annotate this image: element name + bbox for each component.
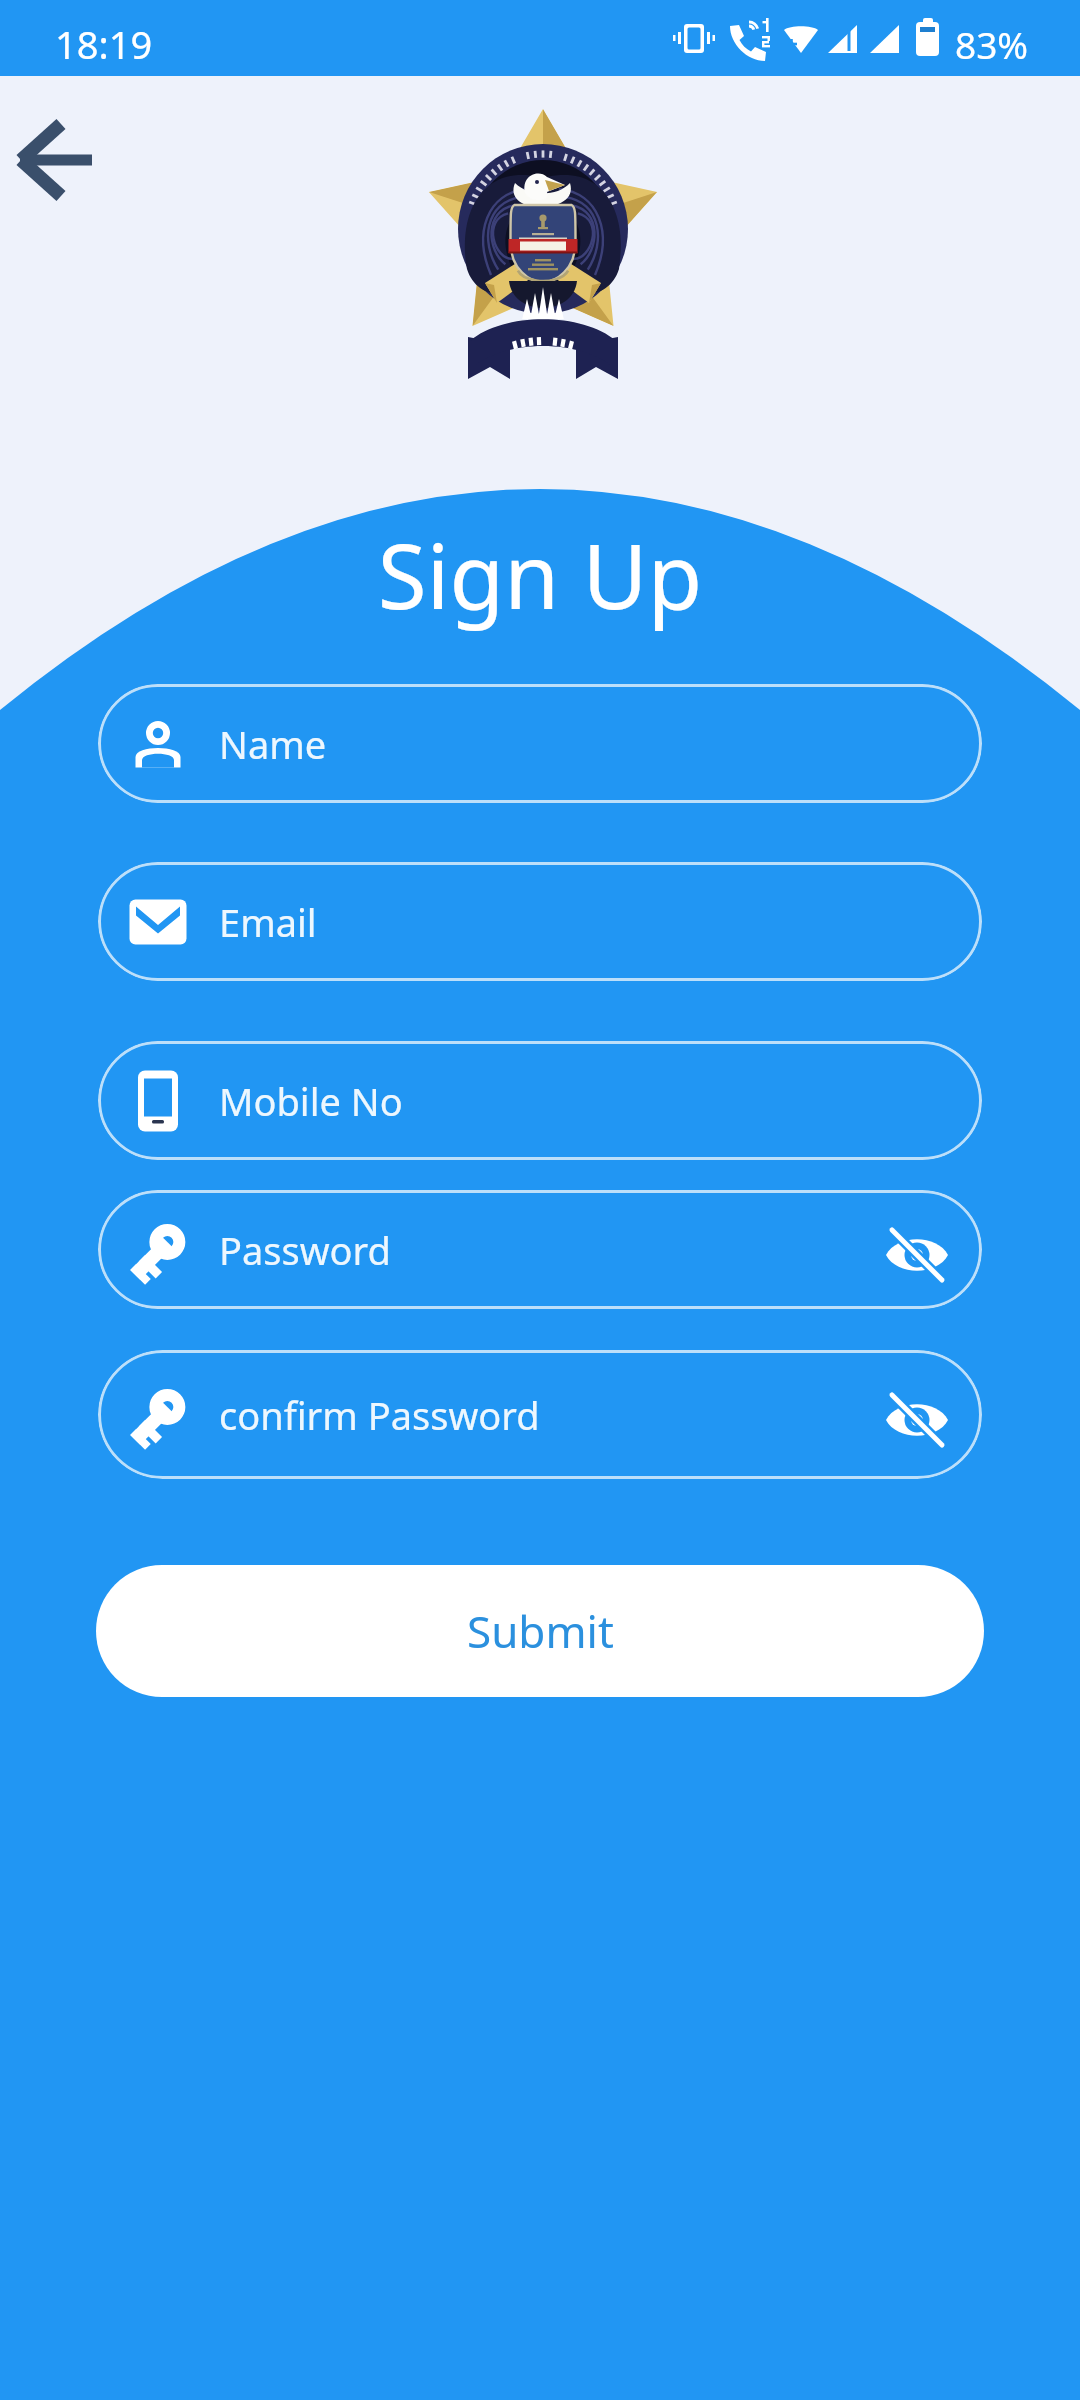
button[interactable]: Submit [96, 1565, 984, 1697]
staticText: 83% [955, 19, 1029, 69]
staticText: Sign Up [0, 514, 1080, 635]
staticText: Submit [467, 1601, 614, 1661]
button[interactable]: Email [98, 862, 982, 981]
staticText: confirm Password [219, 1389, 540, 1441]
staticText: Password [219, 1224, 391, 1276]
button[interactable]: Name [98, 684, 982, 803]
button[interactable]: confirm Password [98, 1350, 982, 1479]
button[interactable]: Mobile No [98, 1041, 982, 1160]
staticText: Mobile No [219, 1075, 403, 1127]
staticText: Name [219, 718, 327, 770]
button[interactable]: Back [0, 104, 112, 216]
button[interactable]: Password [98, 1190, 982, 1309]
button[interactable]: Toggle password visibility [872, 1370, 962, 1460]
staticText: 18:19 [55, 18, 153, 70]
button[interactable]: Toggle password visibility [872, 1205, 962, 1295]
staticText: Email [219, 896, 317, 948]
